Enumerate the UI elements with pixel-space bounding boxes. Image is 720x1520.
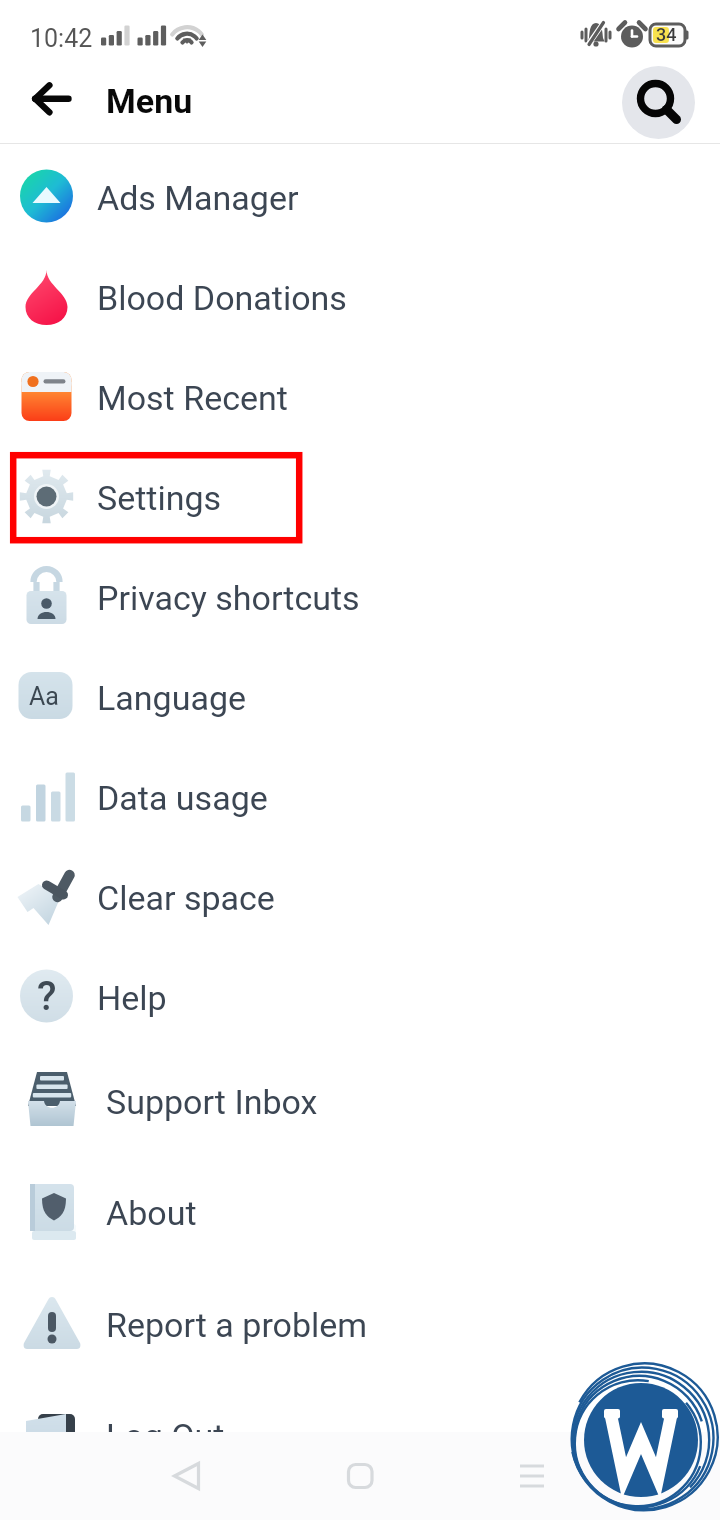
staticText: Aa <box>29 682 59 711</box>
staticText: Settings <box>97 478 222 518</box>
button[interactable]: Recents <box>488 1432 576 1520</box>
staticText: About <box>106 1193 197 1233</box>
button[interactable]: Privacy shortcuts <box>0 546 720 646</box>
staticText: Menu <box>106 81 193 121</box>
button[interactable]: Log Out <box>0 1384 720 1484</box>
staticText: Help <box>97 978 167 1018</box>
button[interactable]: Help <box>0 946 720 1046</box>
button[interactable]: Data usage <box>0 746 720 846</box>
button[interactable]: Language <box>0 646 720 746</box>
staticText: Most Recent <box>97 378 288 418</box>
staticText: Log Out <box>106 1416 225 1456</box>
button[interactable]: Support Inbox <box>0 1050 720 1150</box>
staticText: Support Inbox <box>106 1082 318 1122</box>
button[interactable]: Blood Donations <box>0 246 720 346</box>
button[interactable]: Back <box>142 1432 230 1520</box>
staticText: ? <box>37 973 57 1020</box>
staticText: Data usage <box>97 778 268 818</box>
button[interactable]: Clear space <box>0 846 720 946</box>
staticText: Report a problem <box>106 1305 368 1345</box>
staticText: 10:42 <box>30 24 93 53</box>
staticText: Ads Manager <box>97 178 299 218</box>
button[interactable]: Report a problem <box>0 1273 720 1373</box>
staticText: Language <box>97 678 247 718</box>
button[interactable]: Ads Manager <box>0 146 720 246</box>
staticText: Clear space <box>97 878 275 918</box>
button[interactable]: Home <box>316 1432 404 1520</box>
staticText: 34 <box>656 24 677 45</box>
button[interactable]: Back <box>21 69 81 129</box>
button[interactable]: Search <box>622 66 695 139</box>
button[interactable]: Most Recent <box>0 346 720 446</box>
button[interactable]: Settings <box>0 446 720 546</box>
staticText: Blood Donations <box>97 278 347 318</box>
button[interactable]: About <box>0 1161 720 1261</box>
staticText: Privacy shortcuts <box>97 578 360 618</box>
